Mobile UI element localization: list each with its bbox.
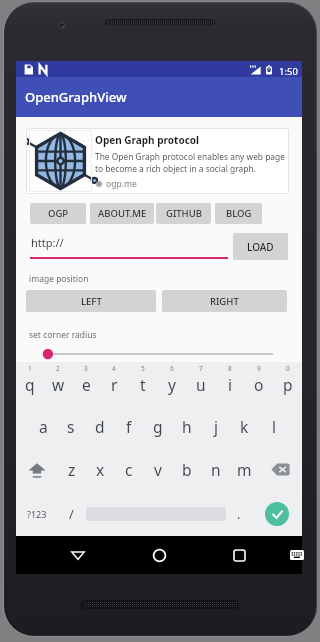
staticText: i xyxy=(228,374,232,395)
staticText: v xyxy=(154,459,162,480)
staticText: s xyxy=(67,416,75,437)
staticText: 1 xyxy=(28,364,32,373)
staticText: e xyxy=(82,374,91,395)
button[interactable]: OGP xyxy=(30,203,86,224)
staticText: OpenGraphView xyxy=(25,88,127,106)
button[interactable]: 0 xyxy=(273,362,302,405)
button[interactable]: c xyxy=(114,448,143,491)
button[interactable]: / xyxy=(57,491,86,536)
staticText: a xyxy=(39,416,48,437)
staticText: GITHUB xyxy=(166,207,202,220)
button[interactable]: z xyxy=(58,448,86,491)
button[interactable]: k xyxy=(230,405,259,448)
button[interactable]: BLOG xyxy=(215,203,262,224)
staticText: f xyxy=(126,416,132,437)
button[interactable]: n xyxy=(201,448,230,491)
button[interactable]: Recents xyxy=(204,536,274,574)
staticText: 6 xyxy=(170,364,174,373)
button[interactable]: . xyxy=(226,491,252,536)
button[interactable]: GITHUB xyxy=(156,203,211,224)
button[interactable]: 8 xyxy=(215,362,244,405)
staticText: ABOUT.ME xyxy=(98,207,147,220)
staticText: 5 xyxy=(141,364,145,373)
staticText: t xyxy=(140,374,146,395)
staticText: l xyxy=(272,416,276,437)
staticText: u xyxy=(196,374,206,395)
staticText: OGP xyxy=(48,207,69,220)
staticText: r xyxy=(111,374,118,395)
button[interactable]: 5 xyxy=(128,362,157,405)
button[interactable]: a xyxy=(29,405,57,448)
staticText: 4 xyxy=(112,364,116,373)
staticText: ?123 xyxy=(27,508,47,520)
button[interactable]: d xyxy=(85,405,114,448)
button[interactable]: LEFT xyxy=(26,290,156,312)
button[interactable]: x xyxy=(86,448,114,491)
button[interactable]: 2 xyxy=(44,362,72,405)
button[interactable]: 9 xyxy=(244,362,273,405)
button[interactable]: Open Graph protocol xyxy=(26,128,289,194)
button[interactable]: Enter xyxy=(265,502,289,526)
staticText: ogp.me xyxy=(106,178,137,190)
staticText: BLOG xyxy=(226,207,252,220)
button[interactable]: Home xyxy=(124,536,194,574)
button[interactable] xyxy=(16,347,302,361)
staticText: LEFT xyxy=(81,295,102,308)
staticText: 3 xyxy=(84,364,88,373)
staticText: p xyxy=(283,374,293,395)
staticText: x xyxy=(96,459,105,480)
button[interactable]: h xyxy=(172,405,201,448)
staticText: k xyxy=(240,416,249,437)
staticText: / xyxy=(69,505,74,523)
staticText: The Open Graph protocol enables any web … xyxy=(95,151,289,175)
staticText: y xyxy=(168,374,176,395)
button[interactable]: Switch keyboard xyxy=(282,536,312,574)
button[interactable]: f xyxy=(114,405,143,448)
staticText: w xyxy=(52,374,65,395)
button[interactable]: g xyxy=(143,405,172,448)
staticText: g xyxy=(153,416,163,437)
button[interactable]: RIGHT xyxy=(162,290,287,312)
button[interactable]: 1 xyxy=(16,362,44,405)
staticText: 1:50 xyxy=(279,65,298,78)
button[interactable]: Shift xyxy=(16,448,58,491)
staticText: 0 xyxy=(286,364,290,373)
staticText: 8 xyxy=(228,364,232,373)
staticText: d xyxy=(95,416,105,437)
button[interactable]: 3 xyxy=(72,362,100,405)
button[interactable]: ?123 xyxy=(16,491,57,536)
button[interactable]: l xyxy=(259,405,288,448)
staticText: h xyxy=(182,416,192,437)
staticText: . xyxy=(237,505,241,523)
staticText: o xyxy=(254,374,264,395)
staticText: RIGHT xyxy=(210,295,239,308)
button[interactable]: LOAD xyxy=(233,233,288,260)
button[interactable]: 6 xyxy=(157,362,186,405)
staticText: 2 xyxy=(56,364,60,373)
button[interactable]: 4 xyxy=(100,362,128,405)
button[interactable]: Back xyxy=(43,536,113,574)
staticText: m xyxy=(237,459,252,480)
button[interactable]: s xyxy=(57,405,85,448)
staticText: set corner radius xyxy=(29,329,97,341)
staticText: 9 xyxy=(257,364,261,373)
staticText: b xyxy=(182,459,192,480)
button[interactable]: Backspace xyxy=(259,448,302,491)
staticText: j xyxy=(214,416,218,437)
button[interactable]: 7 xyxy=(186,362,215,405)
button[interactable]: v xyxy=(143,448,172,491)
staticText: Open Graph protocol xyxy=(95,133,200,147)
staticText: c xyxy=(125,459,133,480)
staticText: q xyxy=(25,374,35,395)
staticText: http:// xyxy=(31,235,64,250)
button[interactable]: m xyxy=(230,448,259,491)
staticText: LOAD xyxy=(247,240,274,254)
button[interactable]: b xyxy=(172,448,201,491)
staticText: 7 xyxy=(199,364,203,373)
staticText: z xyxy=(68,459,76,480)
button[interactable]: j xyxy=(201,405,230,448)
staticText: image position xyxy=(29,273,89,285)
staticText: n xyxy=(211,459,221,480)
button[interactable]: ABOUT.ME xyxy=(90,203,154,224)
